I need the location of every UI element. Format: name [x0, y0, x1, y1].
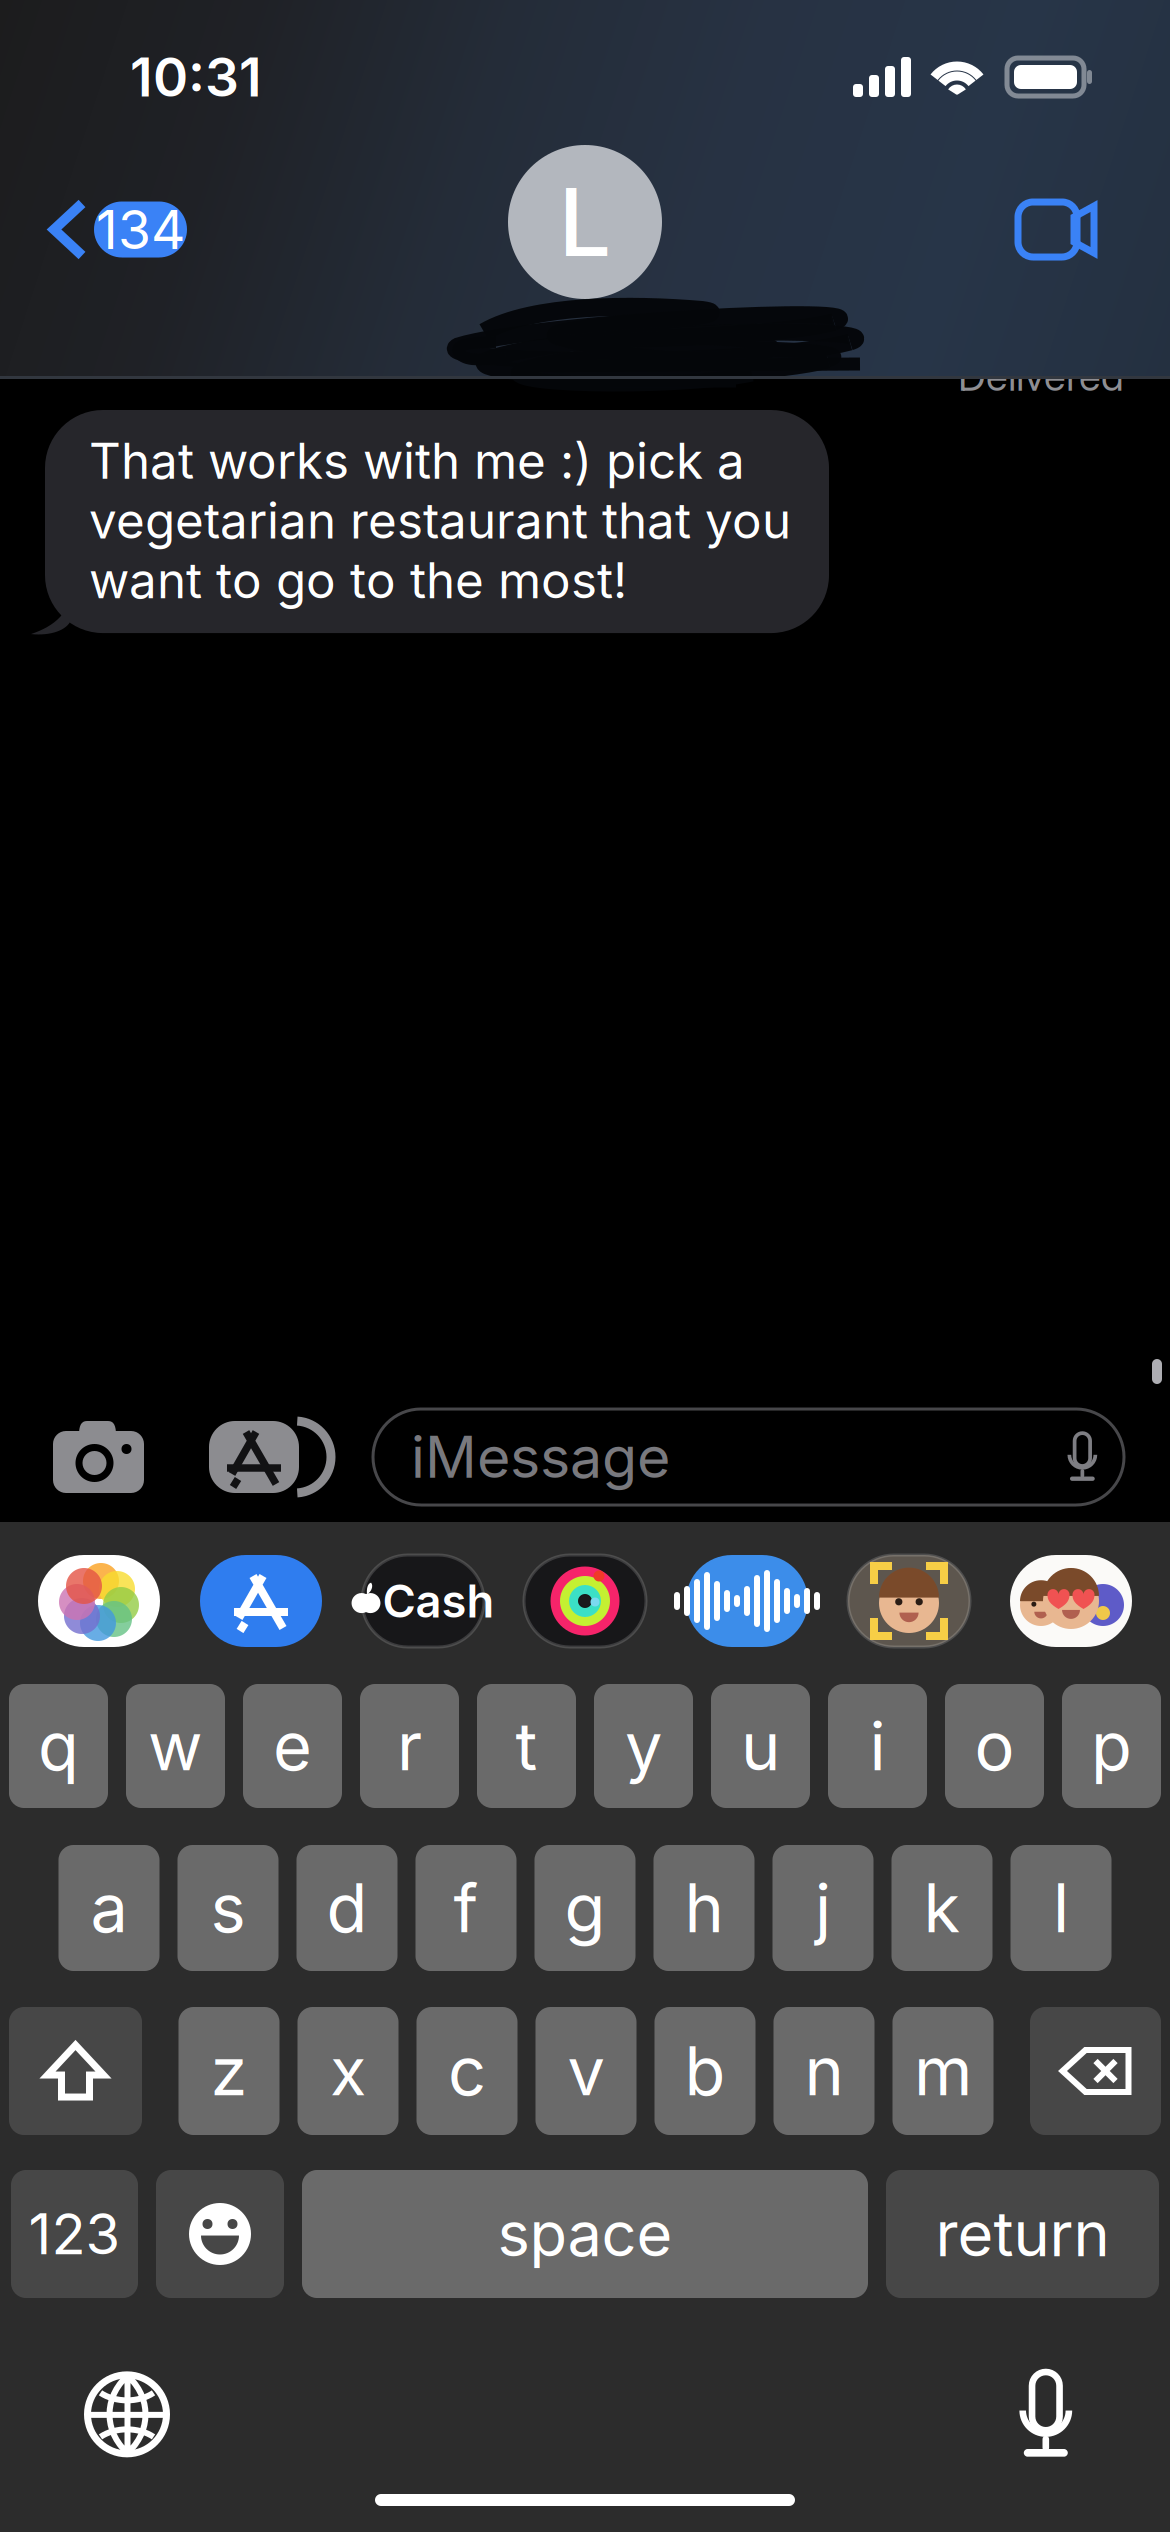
button[interactable]: space: [302, 2170, 868, 2298]
staticText: w: [148, 1706, 203, 1786]
button[interactable]: q: [9, 1684, 108, 1808]
button[interactable]: FaceTime: [1018, 190, 1170, 269]
button[interactable]: j: [772, 1845, 873, 1971]
staticText: f: [453, 1868, 478, 1948]
button[interactable]: Apple Cash: [362, 1555, 484, 1647]
button[interactable]: Memoji Stickers: [1010, 1555, 1132, 1647]
button[interactable]: Next keyboard: [87, 2374, 167, 2454]
button[interactable]: f: [415, 1845, 516, 1971]
button[interactable]: Dictate: [1022, 2372, 1070, 2457]
button[interactable]: m: [892, 2007, 993, 2135]
button[interactable]: 134: [0, 190, 187, 268]
button[interactable]: Camera: [53, 1421, 144, 1493]
button[interactable]: Fitness: [524, 1555, 646, 1647]
staticText: e: [273, 1706, 312, 1786]
staticText: l: [1053, 1868, 1069, 1948]
staticText: u: [741, 1706, 780, 1786]
staticText: q: [38, 1706, 79, 1786]
button[interactable]: Emoji: [156, 2170, 284, 2298]
staticText: 123: [28, 2200, 120, 2268]
button[interactable]: s: [177, 1845, 278, 1971]
staticText: That works with me :) pick a vegetarian …: [89, 431, 791, 610]
button[interactable]: t: [477, 1684, 576, 1808]
button[interactable]: Photos: [38, 1555, 160, 1647]
staticText: y: [625, 1706, 662, 1786]
staticText: p: [1091, 1706, 1132, 1786]
staticText: L: [558, 165, 611, 278]
staticText: Delivered: [958, 352, 1124, 400]
staticText: z: [210, 2031, 247, 2111]
button[interactable]: Apps: [209, 1421, 313, 1493]
button[interactable]: Audio Message: [686, 1555, 808, 1647]
staticText: c: [448, 2031, 486, 2111]
button[interactable]: y: [594, 1684, 693, 1808]
button[interactable]: z: [178, 2007, 279, 2135]
staticText: iMessage: [411, 1422, 670, 1492]
button[interactable]: p: [1062, 1684, 1161, 1808]
staticText: j: [815, 1868, 831, 1948]
staticText: i: [869, 1706, 885, 1786]
staticText: g: [564, 1868, 605, 1948]
staticText: b: [684, 2031, 725, 2111]
staticText: s: [210, 1868, 245, 1948]
staticText: n: [804, 2031, 843, 2111]
button[interactable]: a: [58, 1845, 159, 1971]
button[interactable]: Memoji: [848, 1555, 970, 1647]
button[interactable]: i: [828, 1684, 927, 1808]
staticText: Cash: [383, 1574, 495, 1628]
button[interactable]: v: [535, 2007, 636, 2135]
button[interactable]: Shift: [9, 2007, 142, 2135]
staticText: t: [515, 1706, 537, 1786]
staticText: 134: [96, 197, 185, 262]
staticText: space: [497, 2197, 672, 2271]
staticText: k: [923, 1868, 960, 1948]
staticText: return: [935, 2197, 1109, 2271]
button[interactable]: 123: [11, 2170, 138, 2298]
button[interactable]: h: [653, 1845, 754, 1971]
button[interactable]: App Store: [200, 1555, 322, 1647]
staticText: r: [397, 1706, 422, 1786]
button[interactable]: g: [534, 1845, 635, 1971]
staticText: o: [974, 1706, 1014, 1786]
button[interactable]: u: [711, 1684, 810, 1808]
button[interactable]: k: [891, 1845, 992, 1971]
staticText: h: [684, 1868, 723, 1948]
staticText: v: [567, 2031, 604, 2111]
button[interactable]: l: [1010, 1845, 1111, 1971]
button[interactable]: c: [416, 2007, 517, 2135]
staticText: d: [326, 1868, 367, 1948]
button[interactable]: return: [886, 2170, 1159, 2298]
button[interactable]: w: [126, 1684, 225, 1808]
button[interactable]: Delete: [1030, 2007, 1161, 2135]
button[interactable]: d: [296, 1845, 397, 1971]
button[interactable]: e: [243, 1684, 342, 1808]
button[interactable]: n: [773, 2007, 874, 2135]
staticText: a: [90, 1868, 127, 1948]
staticText: x: [330, 2031, 366, 2111]
button[interactable]: o: [945, 1684, 1044, 1808]
button[interactable]: b: [654, 2007, 755, 2135]
staticText: m: [914, 2031, 972, 2111]
button[interactable]: r: [360, 1684, 459, 1808]
staticText: 10:31: [130, 45, 262, 109]
button[interactable]: x: [297, 2007, 398, 2135]
